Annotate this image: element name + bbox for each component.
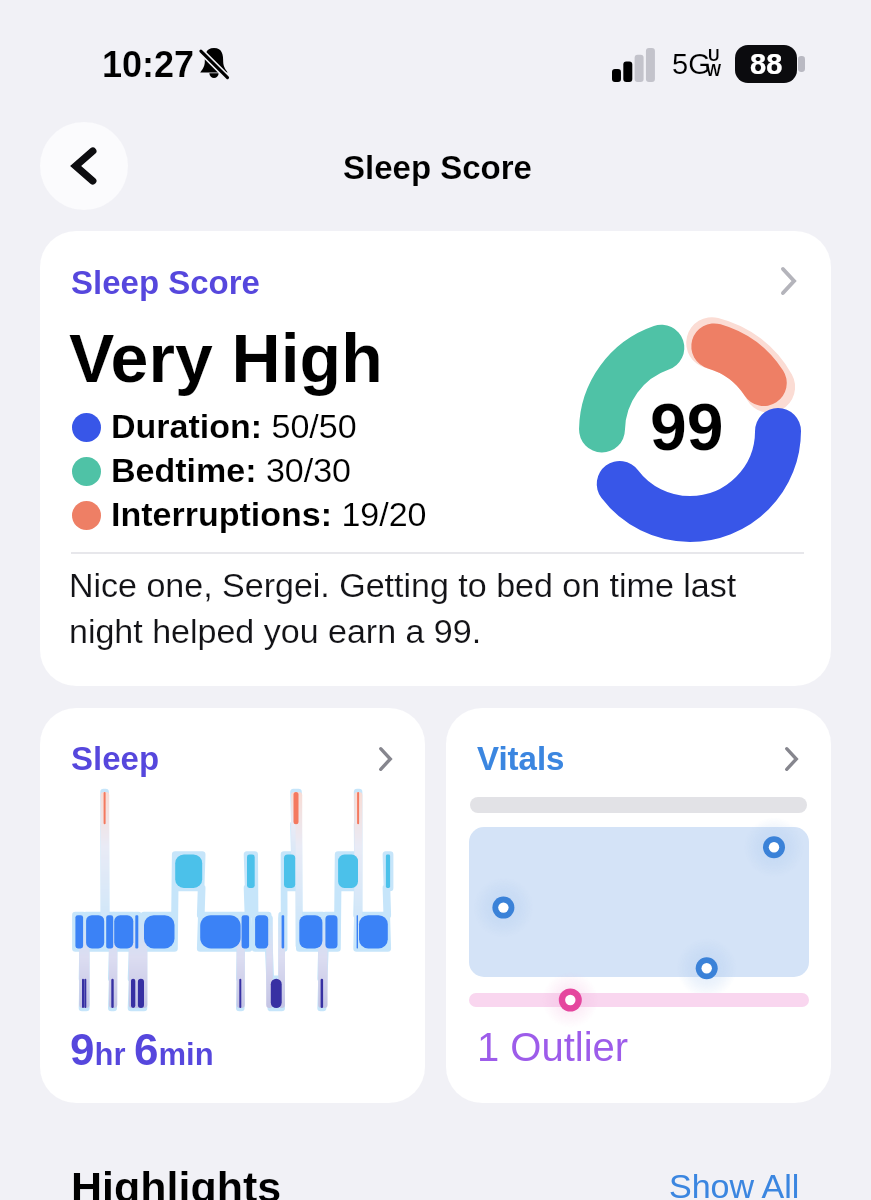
button[interactable]: Back bbox=[40, 122, 128, 210]
button[interactable]: Open Vitals bbox=[785, 747, 798, 771]
staticText: Duration: 50/50 bbox=[111, 407, 357, 445]
staticText: Show All bbox=[669, 1167, 800, 1200]
staticText: 88 bbox=[750, 48, 783, 80]
staticText: Sleep Score bbox=[71, 264, 260, 301]
staticText: Very High bbox=[69, 320, 383, 396]
staticText: Bedtime: 30/30 bbox=[111, 451, 351, 489]
staticText: U bbox=[708, 47, 720, 65]
staticText: 1 Outlier bbox=[477, 1025, 629, 1070]
staticText: W bbox=[706, 62, 722, 80]
button[interactable]: Show All bbox=[669, 1167, 800, 1200]
staticText: 10:27 bbox=[102, 44, 195, 84]
staticText: 5G bbox=[672, 48, 711, 80]
button[interactable]: Open Sleep bbox=[379, 747, 392, 771]
button[interactable]: Open Sleep Score bbox=[781, 267, 796, 295]
staticText: Highlights bbox=[71, 1163, 282, 1200]
staticText: Sleep bbox=[71, 740, 160, 777]
button[interactable]: Sleep bbox=[40, 708, 425, 1103]
staticText: Interruptions: 19/20 bbox=[111, 495, 427, 533]
staticText: Vitals bbox=[477, 740, 565, 777]
button[interactable]: Sleep Score bbox=[40, 231, 831, 686]
staticText: Nice one, Sergei. Getting to bed on time… bbox=[69, 566, 737, 650]
button[interactable]: Vitals bbox=[446, 708, 831, 1103]
staticText: Sleep Score bbox=[343, 149, 532, 186]
staticText: 9hr 6min bbox=[70, 1025, 214, 1074]
staticText: 99 bbox=[650, 390, 724, 464]
